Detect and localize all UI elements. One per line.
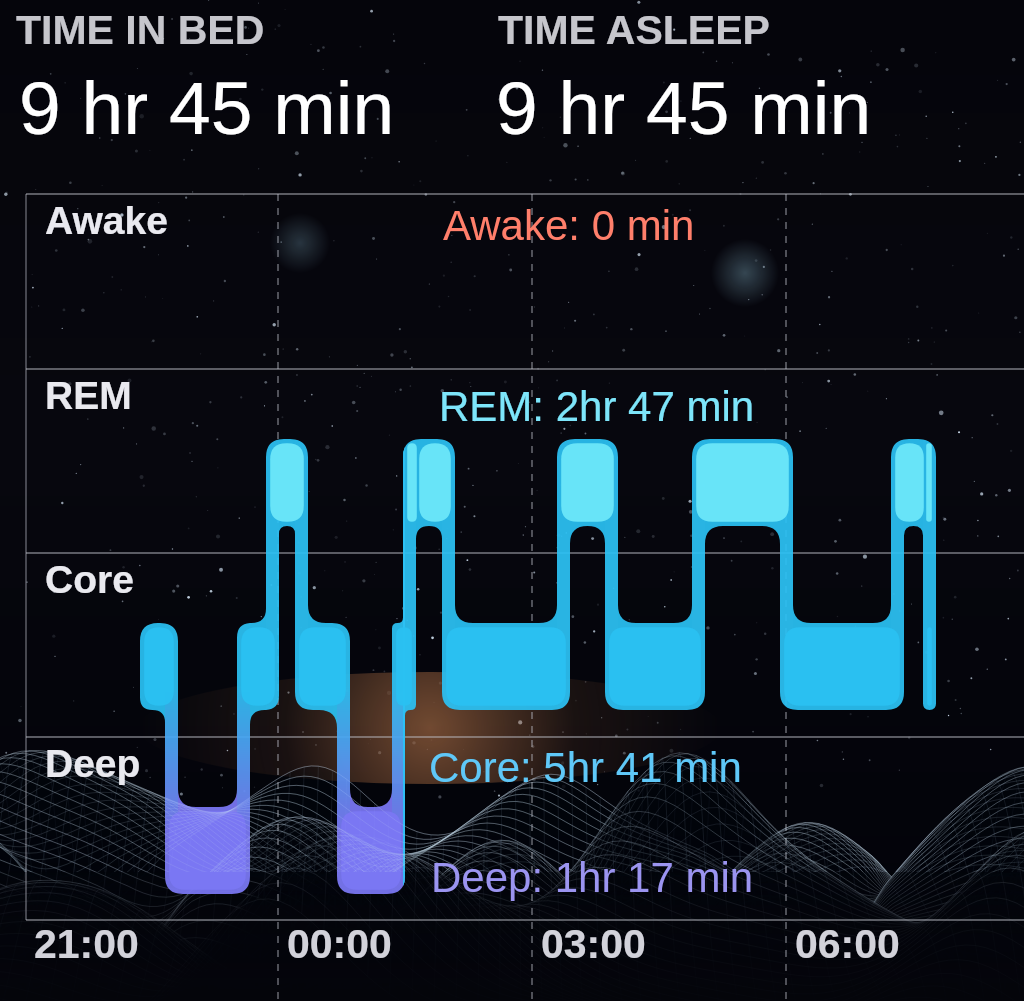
button[interactable] <box>0 0 1024 1001</box>
